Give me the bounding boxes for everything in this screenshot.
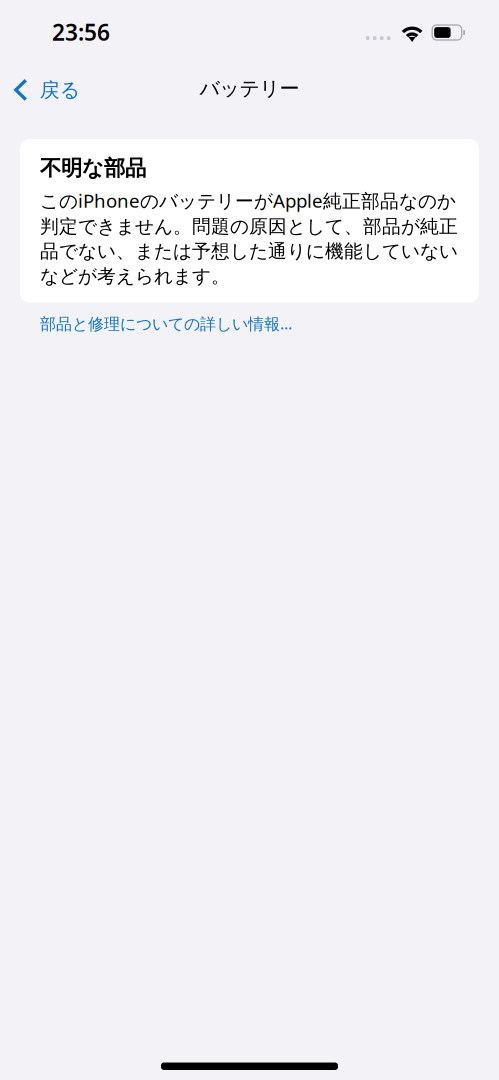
button[interactable]: 戻る <box>0 70 88 110</box>
staticText: 部品と修理についての詳しい情報... <box>40 313 292 334</box>
staticText: バッテリー <box>199 76 299 101</box>
staticText: 戻る <box>40 78 80 102</box>
staticText: 23:56 <box>52 17 110 47</box>
button[interactable]: 部品と修理についての詳しい情報... <box>40 313 292 334</box>
staticText: このiPhoneのバッテリーがApple純正部品なのか判定できません。問題の原因… <box>40 188 458 288</box>
staticText: 不明な部品 <box>40 155 146 181</box>
